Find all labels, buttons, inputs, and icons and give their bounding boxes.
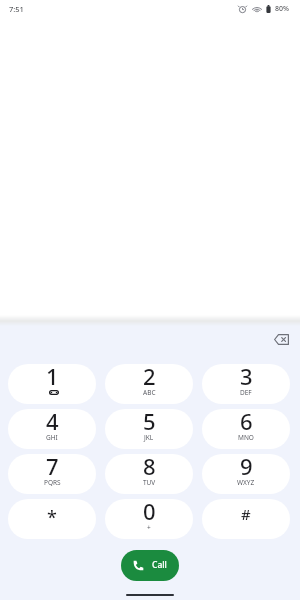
staticText: 7:51 [9,4,24,14]
button[interactable]: 6 [202,409,290,449]
button[interactable]: * [8,499,96,539]
staticText: 9 [240,454,253,481]
staticText: + [147,523,151,532]
button[interactable]: 5 [105,409,193,449]
button[interactable]: 0 [105,499,193,539]
staticText: 5 [143,409,156,436]
staticText: PQRS [44,478,61,487]
staticText: 4 [46,409,59,436]
button[interactable]: 8 [105,454,193,494]
staticText: 3 [240,364,253,391]
staticText: 8 [143,454,156,481]
button[interactable]: # [202,499,290,539]
staticText: DEF [240,388,252,397]
button[interactable]: Backspace [267,325,295,353]
button[interactable]: 7 [8,454,96,494]
staticText: JKL [144,433,154,442]
button[interactable]: 9 [202,454,290,494]
staticText: 1 [46,364,59,391]
staticText: 0 [143,499,156,526]
staticText: GHI [46,433,58,442]
staticText: 80% [275,4,289,14]
button[interactable]: 3 [202,364,290,404]
staticText: Call [152,559,167,571]
staticText: TUV [143,478,156,487]
button[interactable]: 4 [8,409,96,449]
button[interactable]: Call [121,550,179,581]
staticText: * [47,505,57,530]
staticText: 2 [143,364,156,391]
staticText: MNO [238,433,254,442]
button[interactable]: 2 [105,364,193,404]
button[interactable]: 1 [8,364,96,404]
staticText: # [241,504,251,524]
staticText: 7 [46,454,59,481]
staticText: WXYZ [237,478,255,487]
staticText: 6 [240,409,253,436]
staticText: ABC [143,388,156,397]
